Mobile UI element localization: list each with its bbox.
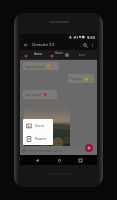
staticText: как дела?	[25, 92, 42, 97]
button[interactable]: Привет	[68, 74, 94, 83]
button[interactable]: Photo	[24, 106, 70, 147]
button[interactable]: Видео	[23, 132, 53, 145]
button[interactable]: Фото	[23, 119, 53, 132]
button[interactable]: More options	[89, 42, 96, 49]
button[interactable]: Здравствуй	[23, 62, 59, 70]
button[interactable]: Back	[22, 41, 30, 49]
button[interactable]: Recents	[75, 155, 85, 165]
button[interactable]: Back	[32, 155, 42, 165]
staticText: 9:33	[87, 35, 95, 40]
button[interactable]: New message	[85, 144, 93, 152]
staticText: Привет	[70, 76, 83, 81]
staticText: Онлайн 33	[32, 42, 54, 48]
button[interactable]: Anna	[34, 51, 43, 56]
button[interactable]: как дела?	[23, 90, 57, 99]
button[interactable]: Ваня	[55, 51, 63, 55]
button[interactable]: Home	[54, 155, 64, 165]
staticText: Видео	[35, 136, 47, 141]
button[interactable]: Contact	[24, 54, 28, 58]
staticText: Ваня	[55, 51, 63, 55]
staticText: Фото	[35, 123, 45, 128]
staticText: Введите сообщение	[28, 148, 64, 153]
button[interactable]: Contact	[65, 53, 69, 57]
button[interactable]: Search	[81, 41, 89, 49]
staticText: Здравствуй	[25, 64, 45, 69]
staticText: Anna	[34, 51, 43, 56]
button[interactable]: Contact	[50, 54, 54, 58]
